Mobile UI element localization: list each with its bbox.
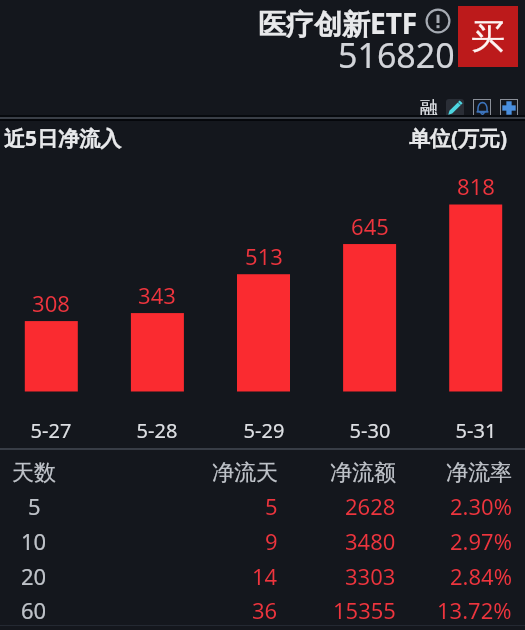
staticText: 5-28	[97, 417, 217, 444]
staticText: 天数	[12, 459, 56, 487]
staticText: 净流额	[330, 459, 396, 487]
staticText: 513	[204, 241, 324, 271]
button[interactable]: Edit note	[446, 99, 464, 117]
staticText: 净流率	[446, 459, 512, 487]
staticText: 9	[265, 526, 278, 556]
staticText: 308	[0, 288, 111, 318]
staticText: 3480	[345, 526, 396, 556]
staticText: 2.84%	[450, 561, 512, 591]
staticText: 516820	[338, 32, 455, 78]
staticText: 5-30	[310, 417, 430, 444]
staticText: 3303	[345, 561, 396, 591]
button[interactable]: 60	[0, 592, 525, 627]
button[interactable]: 天数	[0, 455, 525, 490]
staticText: 5-29	[204, 417, 324, 444]
staticText: 36	[252, 595, 278, 625]
staticText: 15355	[333, 595, 396, 625]
button[interactable]: Add to watchlist	[500, 99, 518, 117]
staticText: 5-31	[416, 417, 525, 444]
staticText: 14	[252, 561, 278, 591]
staticText: 818	[416, 171, 525, 201]
button[interactable]: Price alert	[473, 99, 491, 117]
staticText: 645	[310, 211, 430, 241]
staticText: 近5日净流入	[4, 124, 122, 152]
staticText: 13.72%	[437, 595, 512, 625]
staticText: 60	[21, 595, 47, 625]
staticText: 2.97%	[450, 526, 512, 556]
staticText: 融	[420, 97, 438, 120]
staticText: 单位(万元)	[409, 124, 508, 152]
button[interactable]: 10	[0, 523, 525, 558]
staticText: 2628	[345, 491, 396, 521]
other: Info	[425, 8, 451, 34]
staticText: 343	[97, 280, 217, 310]
staticText: 净流天	[212, 459, 278, 487]
staticText: 2.30%	[450, 491, 512, 521]
staticText: 10	[21, 526, 47, 556]
button[interactable]: 20	[0, 558, 525, 593]
staticText: 买	[471, 15, 505, 58]
staticText: 5-27	[0, 417, 111, 444]
staticText: 医疗创新ETF	[258, 4, 418, 42]
button[interactable]: 5	[0, 488, 525, 523]
button[interactable]: 买	[458, 6, 518, 67]
staticText: 20	[21, 561, 47, 591]
staticText: 5	[265, 491, 278, 521]
staticText: 5	[28, 491, 41, 521]
